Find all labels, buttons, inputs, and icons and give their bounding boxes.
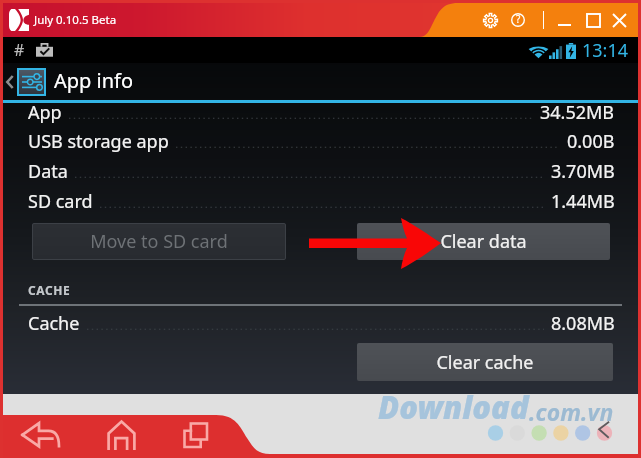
button[interactable]: SD card [3, 186, 638, 216]
button[interactable]: Data [3, 156, 638, 186]
staticText: 3.70MB [551, 159, 615, 184]
button[interactable]: Clear data [357, 223, 610, 260]
staticText: Data [28, 159, 68, 184]
staticText: 1.44MB [551, 189, 615, 214]
button[interactable]: Cache [3, 308, 638, 338]
staticText: App [28, 100, 62, 125]
button[interactable]: Recent apps [175, 414, 217, 456]
staticText: # [14, 39, 25, 61]
button[interactable]: Close [606, 7, 632, 33]
button[interactable]: Help [505, 7, 531, 33]
staticText: 0.00B [567, 129, 615, 154]
button[interactable]: Clear cache [357, 343, 613, 381]
staticText: CACHE [28, 282, 71, 298]
staticText: Move to SD card [90, 229, 228, 254]
button[interactable]: Back [14, 415, 68, 455]
staticText: App info [54, 67, 134, 94]
staticText: 8.08MB [551, 311, 615, 336]
button[interactable]: Minimise [551, 7, 577, 33]
button[interactable]: Move to SD card [32, 223, 286, 260]
button[interactable]: Maximise [580, 7, 606, 33]
staticText: Clear cache [436, 350, 534, 375]
button[interactable]: App [3, 97, 638, 127]
staticText: Clear data [440, 229, 527, 254]
staticText: Download [378, 386, 529, 428]
staticText: 34.52MB [540, 100, 615, 125]
button[interactable]: USB storage app [3, 126, 638, 156]
staticText: .com.vn [529, 396, 614, 427]
staticText: ? [516, 12, 521, 26]
button[interactable]: Settings [477, 7, 503, 33]
staticText: Cache [28, 311, 80, 336]
staticText: SD card [28, 189, 93, 214]
staticText: 13:14 [582, 38, 629, 63]
staticText: July 0.10.5 Beta [34, 12, 117, 28]
staticText: USB storage app [28, 129, 169, 154]
button[interactable]: Home [100, 414, 143, 456]
button[interactable]: Back [3, 63, 17, 100]
